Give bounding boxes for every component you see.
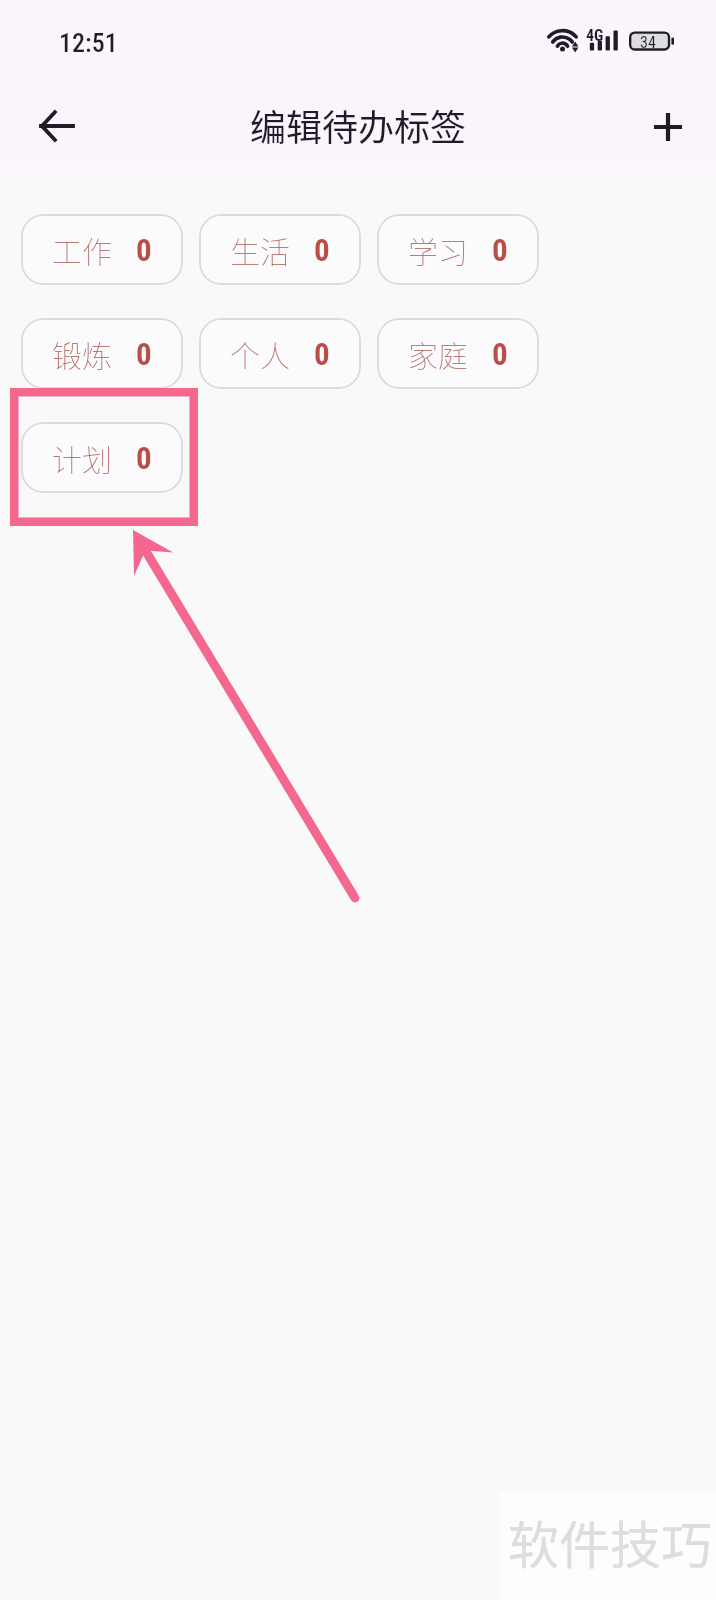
button[interactable]: 工作	[21, 214, 183, 285]
button[interactable]: 计划	[21, 422, 183, 493]
staticText: 34	[640, 33, 656, 52]
button[interactable]: Back	[28, 98, 84, 154]
staticText: 编辑待办标签	[0, 99, 716, 151]
button[interactable]: 生活	[199, 214, 361, 285]
staticText: 家庭	[408, 332, 468, 375]
staticText: 0	[136, 336, 152, 372]
staticText: 学习	[408, 228, 468, 271]
staticText: 0	[492, 336, 508, 372]
staticText: 0	[492, 232, 508, 268]
staticText: 4G	[586, 26, 604, 45]
staticText: 软件技巧	[508, 1505, 713, 1579]
button[interactable]: 学习	[377, 214, 539, 285]
staticText: 个人	[230, 332, 290, 375]
button[interactable]: 个人	[199, 318, 361, 389]
button[interactable]: 家庭	[377, 318, 539, 389]
staticText: 生活	[230, 228, 290, 271]
staticText: 0	[136, 232, 152, 268]
staticText: 0	[136, 440, 152, 476]
staticText: 0	[314, 336, 330, 372]
staticText: 12:51	[59, 28, 118, 58]
staticText: 锻炼	[52, 332, 112, 375]
button[interactable]: Add tag	[640, 99, 696, 155]
staticText: 计划	[52, 436, 112, 479]
staticText: 0	[314, 232, 330, 268]
button[interactable]: 锻炼	[21, 318, 183, 389]
staticText: 工作	[52, 228, 112, 271]
